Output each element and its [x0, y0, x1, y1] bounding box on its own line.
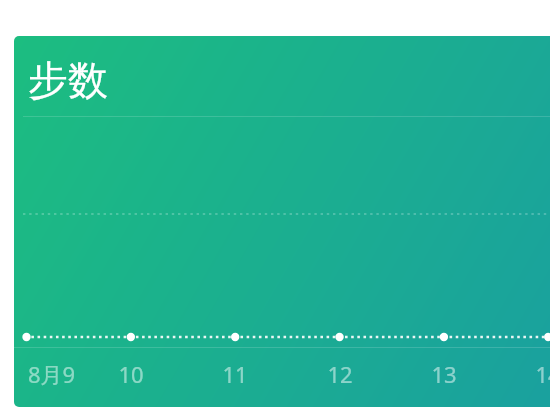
button[interactable]: 14	[508, 359, 550, 389]
button[interactable]: 10	[91, 359, 171, 389]
staticText: 12	[327, 359, 353, 389]
button[interactable]: 11	[195, 359, 275, 389]
staticText: 10	[118, 359, 144, 389]
button[interactable]: 8月9	[28, 359, 108, 389]
staticText: 步数	[28, 55, 108, 105]
staticText: 11	[222, 359, 248, 389]
staticText: 14	[535, 359, 550, 389]
button[interactable]: 13	[404, 359, 484, 389]
staticText: 13	[431, 359, 457, 389]
button[interactable]: 步数 steps chart card	[14, 36, 550, 407]
button[interactable]: 12	[300, 359, 380, 389]
staticText: 8月9	[28, 359, 76, 389]
